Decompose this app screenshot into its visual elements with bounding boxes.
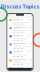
button[interactable]: [8, 58, 32, 66]
button[interactable]: [8, 42, 32, 50]
staticText: Discuss Topics: [0, 3, 39, 10]
button[interactable]: [8, 50, 32, 58]
button[interactable]: [8, 18, 32, 25]
button[interactable]: [8, 34, 32, 41]
button[interactable]: [8, 26, 32, 33]
button[interactable]: [8, 66, 32, 72]
